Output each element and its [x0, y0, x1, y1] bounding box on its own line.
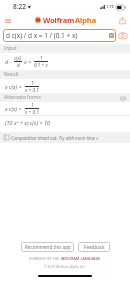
- staticText: © 2019 Wolfram Alpha LLC: [44, 264, 86, 268]
- staticText: 8:22: [13, 2, 26, 11]
- staticText: d c(x) / d x = 1 / (0.1 + x): [6, 31, 78, 40]
- staticText: LTE: [107, 4, 114, 10]
- button[interactable]: Options: [119, 94, 127, 102]
- staticText: Feedback: [84, 244, 105, 250]
- button[interactable]: Recommend this app: [21, 242, 74, 252]
- staticText: Alternate forms: [4, 94, 41, 101]
- staticText: x c(x) =: [5, 83, 24, 90]
- staticText: WOLFRAM LANGUAGE: [61, 256, 101, 260]
- staticText: 1: [31, 102, 34, 108]
- staticText: 1: [40, 55, 43, 61]
- staticText: Input: [4, 45, 17, 52]
- staticText: d: [17, 62, 20, 68]
- staticText: 1: [31, 80, 34, 86]
- button[interactable]: Menu: [2, 15, 13, 26]
- button[interactable]: Share: [117, 15, 128, 26]
- staticText: Recommend this app: [25, 244, 71, 250]
- button[interactable]: Feedback: [78, 242, 110, 252]
- staticText: 0.1 + x: [34, 62, 48, 68]
- staticText: ·: [10, 58, 12, 65]
- staticText: (10 x² + x) c(x) = 10: [5, 119, 50, 126]
- button[interactable]: Camera: [116, 29, 129, 42]
- staticText: x =: [24, 58, 33, 65]
- staticText: Alpha: [75, 15, 97, 25]
- staticText: POWERED BY THE: [29, 256, 61, 260]
- staticText: Result: [4, 71, 19, 78]
- staticText: c(x): [14, 55, 22, 61]
- staticText: Computation timed out. Try with more tim…: [11, 135, 99, 141]
- staticText: x c(x) =: [5, 105, 24, 112]
- button[interactable]: Clear: [109, 33, 114, 38]
- staticText: Wolfram: [43, 15, 75, 25]
- button[interactable]: d c(x) / d x = 1 / (0.1 + x): [3, 29, 116, 42]
- staticText: x + 0.1: [25, 109, 39, 115]
- staticText: x + 0.1: [25, 87, 39, 93]
- staticText: d: [5, 58, 9, 65]
